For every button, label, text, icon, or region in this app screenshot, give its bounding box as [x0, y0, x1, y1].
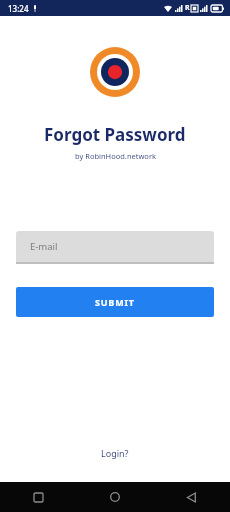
button[interactable]: Back — [153, 482, 230, 512]
staticText: R — [185, 3, 190, 13]
button[interactable]: Recent apps — [0, 482, 76, 512]
button[interactable]: E-mail — [16, 231, 214, 264]
staticText: Forgot Password — [44, 123, 186, 146]
button[interactable]: Login? — [89, 442, 141, 464]
staticText: SUBMIT — [95, 296, 135, 308]
button[interactable]: Home — [76, 482, 153, 512]
staticText: Login? — [101, 447, 129, 459]
button[interactable]: SUBMIT — [16, 287, 214, 317]
staticText: by RobinHood.network — [75, 151, 156, 161]
staticText: E-mail — [30, 240, 58, 253]
staticText: 13:24 — [8, 3, 29, 14]
